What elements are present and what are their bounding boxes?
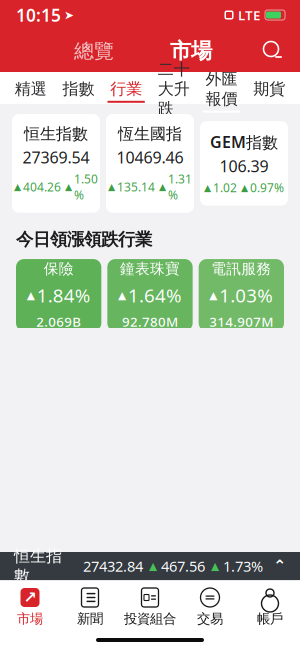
staticText: 1.64% <box>128 283 182 308</box>
staticText: 二十大升跌 <box>158 59 190 118</box>
button[interactable]: 投資組合 <box>120 585 180 629</box>
button[interactable]: 新聞 <box>60 585 120 629</box>
button[interactable]: 市場 <box>160 32 222 70</box>
button[interactable]: 恒生指數 <box>12 114 100 213</box>
staticText: 電訊服務 <box>211 260 271 278</box>
staticText: 1.84% <box>37 283 91 308</box>
staticText: LTE <box>238 6 260 24</box>
staticText: 總覽 <box>74 39 114 63</box>
staticText: 投資組合 <box>124 610 176 627</box>
staticText: 1.50% <box>74 171 98 203</box>
staticText: ▲ <box>27 289 35 301</box>
staticText: 指數 <box>62 79 94 99</box>
staticText: ▲ <box>65 181 72 192</box>
staticText: 帳戶 <box>257 610 283 627</box>
staticText: ↗ <box>23 588 36 607</box>
staticText: ▲ <box>159 181 166 192</box>
staticText: ▲ <box>241 182 248 193</box>
button[interactable]: ↗ <box>0 585 60 629</box>
staticText: 恒生指數 <box>14 546 62 586</box>
staticText: 0.97% <box>250 180 284 196</box>
staticText: ▲ <box>211 560 219 572</box>
staticText: GEM指數 <box>210 131 278 152</box>
button[interactable]: 精選 <box>7 79 55 103</box>
staticText: 鐘表珠寶 <box>120 260 180 278</box>
staticText: ▲ <box>209 289 217 301</box>
staticText: 27432.84 <box>83 556 143 576</box>
staticText: 92.780M <box>122 313 178 330</box>
staticText: 1.02 <box>213 180 237 196</box>
button[interactable]: 總覽 <box>64 33 124 69</box>
staticText: 467.56 <box>161 556 205 576</box>
staticText: 精選 <box>15 79 47 99</box>
staticText: 外匯報價 <box>205 69 237 109</box>
button[interactable]: 鐘表珠寶 <box>107 259 193 331</box>
staticText: 行業 <box>110 79 142 99</box>
staticText: 2.069B <box>36 313 81 330</box>
button[interactable]: 帳戶 <box>240 585 300 629</box>
button[interactable]: 期貨 <box>245 79 293 103</box>
staticText: 314.907M <box>209 313 273 330</box>
staticText: 10469.46 <box>116 147 183 168</box>
staticText: 保險 <box>44 260 74 278</box>
staticText: 今日領漲領跌行業 <box>16 229 152 250</box>
staticText: 恆生國指 <box>118 124 182 144</box>
staticText: 10:15 <box>16 3 61 26</box>
button[interactable]: GEM指數 <box>200 121 288 206</box>
staticText: 1.73% <box>223 556 263 576</box>
button[interactable]: 交易 <box>180 585 240 629</box>
staticText: ➤ <box>64 8 74 22</box>
staticText: ▲ <box>118 289 126 301</box>
staticText: 恒生指數 <box>24 124 88 144</box>
staticText: 404.26 <box>23 179 61 195</box>
button[interactable]: 外匯報價 <box>198 69 245 113</box>
staticText: 市場 <box>17 610 43 627</box>
button[interactable]: 搜尋 <box>258 36 288 66</box>
staticText: ▲ <box>108 181 115 192</box>
staticText: 新聞 <box>77 610 103 627</box>
staticText: 期貨 <box>253 79 285 99</box>
button[interactable]: 指數 <box>55 79 102 103</box>
button[interactable]: 保險 <box>16 259 101 331</box>
staticText: ▲ <box>204 182 211 193</box>
button[interactable]: 恒生指數 <box>0 552 300 580</box>
button[interactable]: 行業 <box>102 79 150 103</box>
button[interactable]: 恆生國指 <box>106 114 194 213</box>
staticText: 1.03% <box>219 283 273 308</box>
staticText: ⌃ <box>273 557 286 575</box>
staticText: 市場 <box>170 38 212 64</box>
staticText: ▲ <box>149 560 157 572</box>
staticText: 交易 <box>197 610 223 627</box>
button[interactable]: 二十大升跌 <box>150 59 198 122</box>
button[interactable]: 電訊服務 <box>199 259 284 331</box>
staticText: 27369.54 <box>22 147 89 168</box>
staticText: 106.39 <box>219 155 268 177</box>
staticText: ▲ <box>14 181 21 192</box>
